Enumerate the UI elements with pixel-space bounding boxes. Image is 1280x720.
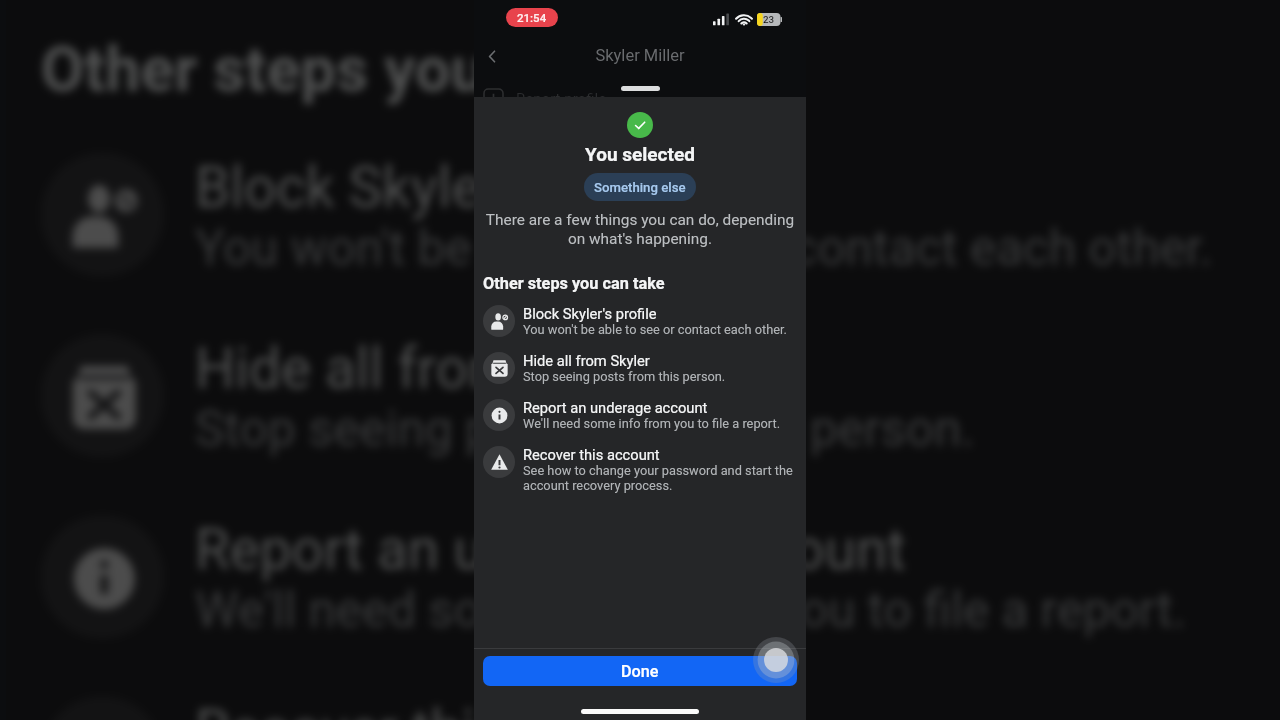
button[interactable]: Block Skyler's profile [474,298,806,344]
staticText: Hide all from Skyler [195,334,684,399]
staticText: Recover this account [195,696,723,720]
button[interactable]: Recover this account [474,439,806,500]
staticText: Stop seeing posts from this person. [523,369,726,384]
staticText: You won't be able to see or contact each… [523,322,787,337]
button[interactable]: Something else [584,173,696,201]
staticText: Report profile [516,90,607,108]
staticText: You won't be able to see or contact each… [195,218,1213,276]
staticText: Block Skyler's profile [195,153,711,218]
staticText: There are a few things you can do, depen… [479,211,801,247]
staticText: Report an underage account [195,515,908,581]
staticText: We'll need some info from you to file a … [523,416,781,431]
staticText: We'll need some info from you to file a … [195,581,1189,638]
staticText: You selected [585,143,695,165]
staticText: Other steps you can take [483,274,665,293]
button[interactable]: Report an underage account [474,392,806,438]
staticText: Recover this account [523,446,660,463]
staticText: Block Skyler's profile [523,305,657,322]
button[interactable]: Hide all from Skyler [474,345,806,391]
staticText: Skyler Miller [474,46,806,65]
staticText: Done [621,662,659,681]
staticText: See how to change your password and star… [523,463,797,493]
staticText: Report an underage account [523,399,708,416]
staticText: Other steps you can take [41,33,742,106]
staticText: 21:54 [517,11,547,24]
staticText: 23 [763,14,775,25]
button[interactable]: Back [478,42,506,70]
staticText: Hide all from Skyler [523,352,650,369]
button[interactable]: Done [483,656,797,686]
staticText: Stop seeing posts from this person. [195,399,977,457]
staticText: Something else [594,180,686,195]
